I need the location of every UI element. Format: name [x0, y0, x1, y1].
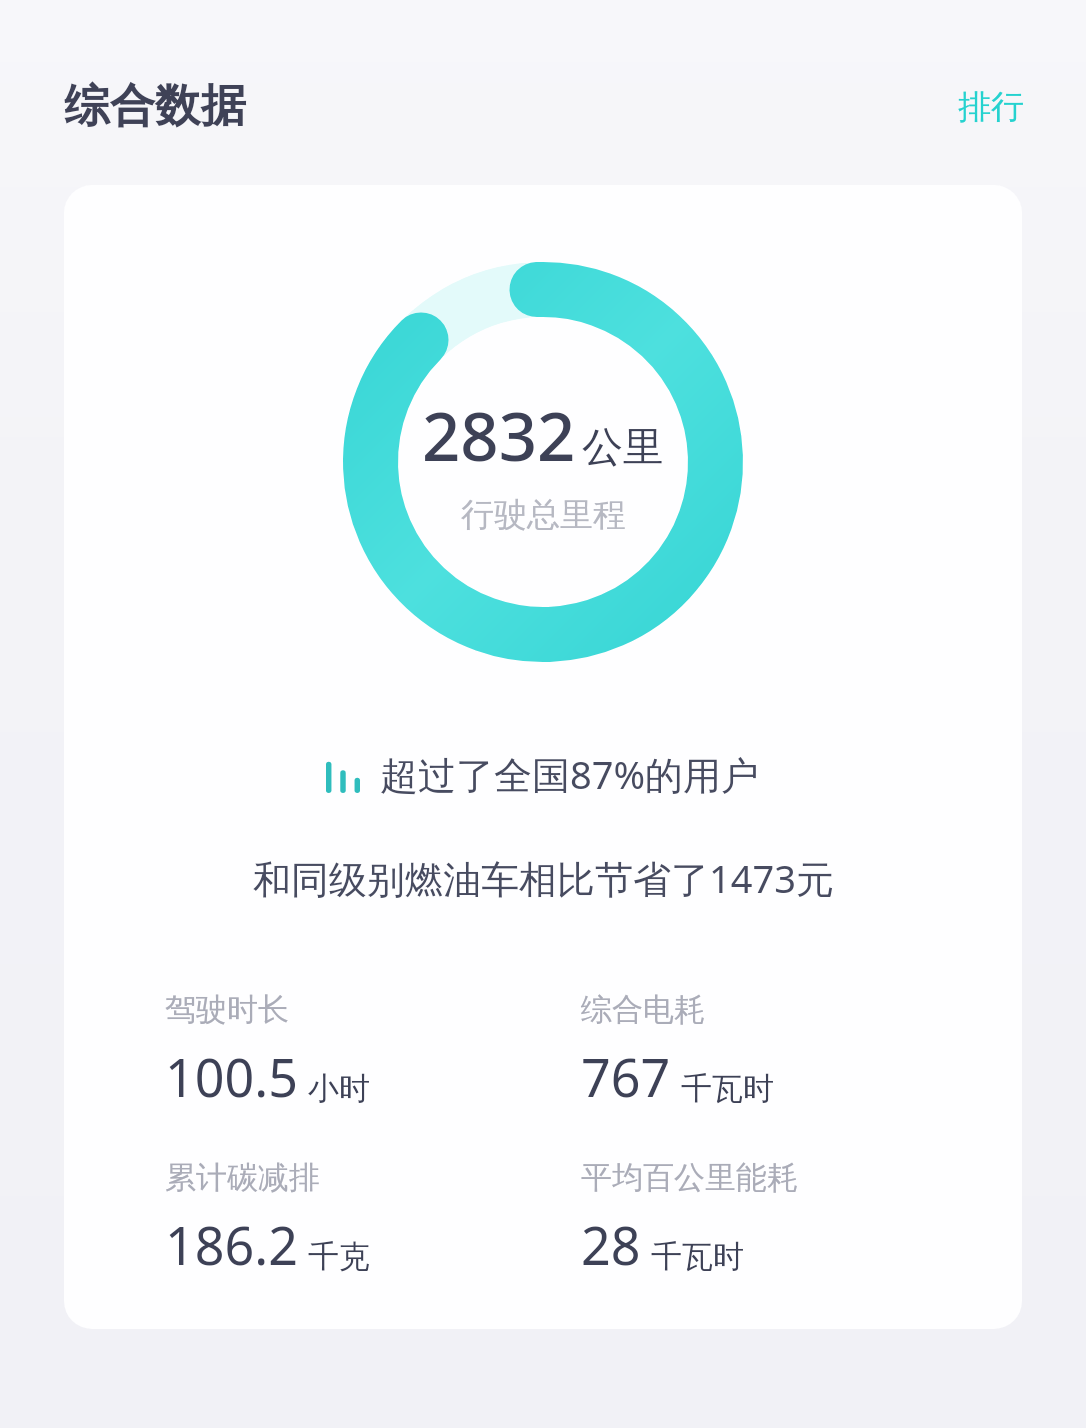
staticText: 平均百公里能耗	[581, 1158, 798, 1197]
staticText: 排行	[958, 86, 1024, 128]
staticText: 186.2	[165, 1209, 298, 1280]
button[interactable]: 排行	[952, 80, 1030, 134]
staticText: 千克	[308, 1237, 370, 1276]
button[interactable]: 综合电耗	[543, 990, 1022, 1112]
staticText: 小时	[308, 1069, 370, 1108]
staticText: 综合电耗	[581, 990, 705, 1029]
staticText: 综合数据	[64, 78, 246, 135]
staticText: 公里	[582, 422, 664, 474]
button[interactable]: 2832	[64, 185, 1022, 1329]
button[interactable]: 驾驶时长	[64, 990, 543, 1112]
staticText: 28	[581, 1209, 641, 1280]
staticText: 2832	[422, 389, 576, 480]
staticText: 和同级别燃油车相比节省了1473元	[253, 852, 834, 904]
button[interactable]: 平均百公里能耗	[543, 1158, 1022, 1280]
button[interactable]: 超过了全国87%的用户	[318, 744, 768, 804]
staticText: 驾驶时长	[165, 990, 289, 1029]
staticText: 行驶总里程	[461, 494, 626, 536]
staticText: 千瓦时	[651, 1237, 744, 1276]
staticText: 100.5	[165, 1041, 298, 1112]
button[interactable]: 累计碳减排	[64, 1158, 543, 1280]
staticText: 千瓦时	[681, 1069, 774, 1108]
staticText: 超过了全国87%的用户	[380, 748, 760, 800]
staticText: 767	[581, 1041, 671, 1112]
staticText: 累计碳减排	[165, 1158, 320, 1197]
